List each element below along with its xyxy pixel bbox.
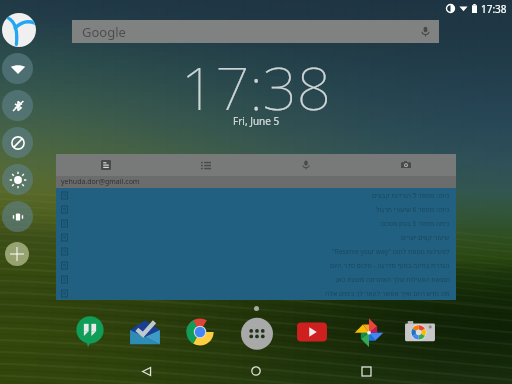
button[interactable]: yehuda.dor@gmail.com	[56, 176, 456, 188]
staticText: כיתה מספר 6 שיעורי תרגול	[376, 205, 450, 214]
button[interactable]: Home	[201, 358, 311, 384]
button[interactable]: Vibrate	[2, 201, 33, 232]
staticText: Google	[82, 23, 126, 41]
button[interactable]: Hangouts	[70, 314, 110, 350]
button[interactable]: Brightness	[2, 164, 33, 195]
button[interactable]: מה חדש היום ואיך אפשר לעזור לך בימים אלה	[56, 286, 456, 300]
other: Page indicator	[254, 306, 259, 311]
button[interactable]: Inbox	[125, 314, 165, 350]
other: Voice search	[420, 26, 431, 37]
button[interactable]: New note	[56, 154, 156, 176]
staticText: 17:38	[481, 2, 507, 16]
button[interactable]: Back	[91, 358, 201, 384]
button[interactable]: Auto-rotate	[2, 127, 33, 158]
button[interactable]: כיתה מספר 3 בוחן מסכם	[56, 216, 456, 230]
staticText: שיעור קווים ישרים	[401, 233, 450, 242]
button[interactable]: Assistant	[2, 13, 36, 47]
staticText: "Reserve your way" לפעילות נוספת לחצו	[332, 247, 450, 256]
button[interactable]: Photo note	[356, 154, 456, 176]
button[interactable]: Recent apps	[311, 358, 421, 384]
staticText: תוצאת הפעילות שלך האחרונה מוצגת כאן	[336, 275, 450, 284]
button[interactable]: Voice note	[256, 154, 356, 176]
button[interactable]: "Reserve your way" לפעילות נוספת לחצו	[56, 244, 456, 258]
button[interactable]: כיתה מספר 6 שיעורי תרגול	[56, 202, 456, 216]
button[interactable]: תוצאת הפעילות שלך האחרונה מוצגת כאן	[56, 272, 456, 286]
staticText: Fri, June 5	[233, 114, 280, 128]
staticText: הגדרת בחינה בסוף מדרגה - סיכום סדר היום	[330, 261, 450, 270]
staticText: 17:38	[181, 46, 331, 128]
staticText: כיתה מספר 3 בוחן מסכם	[381, 219, 450, 228]
button[interactable]: Photos	[349, 314, 389, 350]
button[interactable]: Add	[5, 242, 29, 266]
button[interactable]: Google	[72, 20, 439, 43]
staticText: yehuda.dor@gmail.com	[61, 177, 140, 187]
button[interactable]: Bluetooth	[2, 90, 33, 121]
staticText: כיתה מספר 5 הורדות קבצים	[372, 191, 450, 200]
button[interactable]: Chrome	[180, 314, 220, 350]
button[interactable]: Apps	[237, 314, 277, 350]
staticText: מה חדש היום ואיך אפשר לעזור לך בימים אלה	[325, 289, 450, 298]
button[interactable]: New note	[56, 154, 456, 176]
button[interactable]: New list	[156, 154, 256, 176]
button[interactable]: Camera	[400, 314, 440, 350]
button[interactable]: YouTube	[292, 314, 332, 350]
button[interactable]: הגדרת בחינה בסוף מדרגה - סיכום סדר היום	[56, 258, 456, 272]
button[interactable]: כיתה מספר 5 הורדות קבצים	[56, 188, 456, 202]
button[interactable]: Wi-Fi	[2, 53, 33, 84]
